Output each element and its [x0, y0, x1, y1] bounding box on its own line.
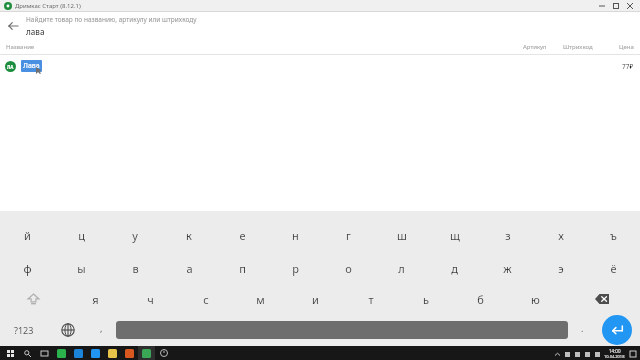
button[interactable]: м	[233, 285, 288, 313]
button[interactable]: й	[0, 219, 54, 252]
staticText: д	[451, 261, 458, 276]
button[interactable]: .	[570, 313, 594, 346]
staticText: ъ	[610, 228, 617, 243]
button[interactable]: ю	[508, 285, 563, 313]
button[interactable]: Taskbar item 1	[2, 346, 19, 360]
staticText: з	[505, 228, 511, 243]
button[interactable]: minimize	[595, 0, 609, 11]
button[interactable]: ч	[123, 285, 178, 313]
staticText: е	[239, 228, 246, 243]
button[interactable]: Tray icon 1	[562, 349, 572, 359]
button[interactable]: г	[322, 219, 375, 252]
staticText: Название	[6, 43, 35, 51]
button[interactable]: Backspace	[563, 285, 640, 313]
button[interactable]: Show hidden icons	[552, 349, 562, 359]
button[interactable]: я	[67, 285, 123, 313]
staticText: у	[132, 228, 138, 243]
staticText: т	[368, 292, 374, 307]
button[interactable]: ЛА	[0, 55, 640, 77]
button[interactable]: д	[428, 252, 481, 285]
button[interactable]: ,	[88, 313, 114, 346]
button[interactable]: Taskbar item 2	[19, 346, 36, 360]
staticText: Лава	[23, 61, 40, 71]
staticText: Штрихкод	[563, 43, 593, 51]
staticText: ё	[610, 261, 617, 276]
button[interactable]: ё	[587, 252, 640, 285]
staticText: о	[345, 261, 352, 276]
button[interactable]: и	[288, 285, 343, 313]
staticText: .	[581, 322, 584, 334]
button[interactable]: с	[178, 285, 233, 313]
staticText: ш	[397, 228, 407, 243]
staticText: ч	[147, 292, 154, 307]
staticText: ,	[100, 322, 103, 334]
button[interactable]: р	[269, 252, 322, 285]
staticText: Дримкас Старт (8.12.1)	[15, 2, 81, 10]
staticText: м	[256, 292, 265, 307]
button[interactable]: п	[216, 252, 269, 285]
staticText: ?123	[14, 324, 34, 336]
button[interactable]: Taskbar item 5	[70, 346, 87, 360]
button[interactable]: 14:00	[604, 348, 625, 359]
button[interactable]: ы	[54, 252, 108, 285]
button[interactable]: maximize	[609, 0, 623, 11]
button[interactable]: Enter	[602, 315, 632, 345]
button[interactable]: Taskbar item 7	[104, 346, 121, 360]
button[interactable]: Tray icon 4	[592, 349, 602, 359]
button[interactable]: ш	[375, 219, 428, 252]
button[interactable]: т	[343, 285, 398, 313]
staticText: 77₽	[622, 62, 634, 71]
staticText: в	[132, 261, 139, 276]
button[interactable]: н	[269, 219, 322, 252]
staticText: Артикул	[523, 43, 547, 51]
staticText: л	[398, 261, 405, 276]
button[interactable]: ъ	[587, 219, 640, 252]
button[interactable]: ц	[54, 219, 108, 252]
staticText: ж	[503, 261, 512, 276]
button[interactable]: Taskbar item 8	[121, 346, 138, 360]
button[interactable]: л	[375, 252, 428, 285]
button[interactable]: о	[322, 252, 375, 285]
button[interactable]: ь	[398, 285, 453, 313]
button[interactable]: ?123	[0, 313, 48, 346]
button[interactable]: э	[534, 252, 587, 285]
button[interactable]: close	[623, 0, 637, 11]
button[interactable]: б	[453, 285, 508, 313]
button[interactable]: у	[108, 219, 162, 252]
staticText: с	[203, 292, 209, 307]
button[interactable]: Найдите товар по названию, артикулу или …	[26, 15, 640, 37]
button[interactable]: Taskbar item 3	[36, 346, 53, 360]
staticText: Найдите товар по названию, артикулу или …	[26, 15, 197, 24]
button[interactable]: к	[162, 219, 216, 252]
staticText: 14:00	[609, 348, 621, 354]
staticText: ф	[23, 261, 32, 276]
button[interactable]: Tray icon 3	[582, 349, 592, 359]
button[interactable]: Taskbar item 9	[138, 346, 155, 360]
button[interactable]: з	[481, 219, 534, 252]
staticText: а	[186, 261, 193, 276]
button[interactable]: Shift	[0, 285, 67, 313]
button[interactable]: Change language	[48, 313, 88, 346]
button[interactable]: в	[108, 252, 162, 285]
staticText: ЛА	[7, 64, 14, 70]
staticText: ы	[77, 261, 86, 276]
staticText: 10.04.2018	[604, 354, 625, 359]
button[interactable]: х	[534, 219, 587, 252]
button[interactable]: Tray icon 2	[572, 349, 582, 359]
button[interactable]: Taskbar item 6	[87, 346, 104, 360]
button[interactable]: щ	[428, 219, 481, 252]
button[interactable]: Back	[3, 16, 23, 36]
button[interactable]: Clock app	[158, 347, 170, 359]
staticText: ь	[423, 292, 429, 307]
staticText: ц	[78, 228, 85, 243]
button[interactable]: е	[216, 219, 269, 252]
button[interactable]: Notifications	[628, 349, 638, 359]
button[interactable]: а	[162, 252, 216, 285]
staticText: Цена	[619, 43, 634, 51]
button[interactable]: Taskbar item 4	[53, 346, 70, 360]
button[interactable]: ж	[481, 252, 534, 285]
staticText: х	[558, 228, 564, 243]
staticText: лава	[26, 26, 45, 37]
button[interactable]: ф	[0, 252, 54, 285]
